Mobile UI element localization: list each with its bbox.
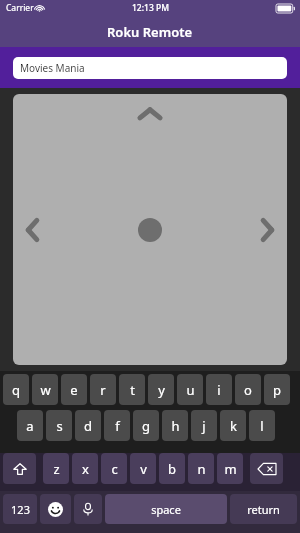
staticText: Movies Mania — [20, 61, 85, 75]
staticText: m — [224, 460, 237, 478]
button[interactable]: Backspace — [250, 453, 283, 484]
staticText: a — [26, 417, 34, 435]
button[interactable]: s — [46, 410, 72, 441]
button[interactable]: Microphone — [74, 494, 102, 524]
staticText: n — [197, 460, 206, 478]
staticText: w — [40, 381, 51, 399]
button[interactable]: z — [43, 453, 69, 484]
button[interactable]: a — [17, 410, 43, 441]
staticText: u — [186, 381, 195, 399]
button[interactable]: w — [32, 374, 58, 405]
button[interactable]: o — [235, 374, 261, 405]
staticText: return — [247, 502, 280, 517]
button[interactable]: y — [148, 374, 174, 405]
staticText: space — [151, 502, 181, 517]
button[interactable]: Right — [244, 207, 287, 253]
button[interactable]: t — [119, 374, 145, 405]
button[interactable]: c — [101, 453, 127, 484]
button[interactable]: q — [3, 374, 29, 405]
button[interactable]: e — [61, 374, 87, 405]
button[interactable]: 123 — [3, 494, 37, 524]
staticText: s — [56, 417, 63, 435]
button[interactable]: g — [133, 410, 159, 441]
button[interactable]: m — [217, 453, 243, 484]
button[interactable]: Shift — [3, 453, 36, 484]
button[interactable]: Movies Mania — [13, 57, 287, 79]
button[interactable]: space — [105, 494, 227, 524]
staticText: c — [111, 460, 118, 478]
button[interactable]: x — [72, 453, 98, 484]
staticText: o — [244, 381, 252, 399]
button[interactable]: r — [90, 374, 116, 405]
staticText: j — [202, 417, 206, 435]
button[interactable]: n — [188, 453, 214, 484]
staticText: Carrier — [6, 2, 34, 14]
staticText: v — [140, 460, 147, 478]
staticText: f — [115, 417, 120, 435]
staticText: q — [12, 381, 20, 399]
button[interactable]: j — [191, 410, 217, 441]
button[interactable]: p — [264, 374, 290, 405]
button[interactable]: f — [104, 410, 130, 441]
staticText: d — [84, 417, 92, 435]
button[interactable]: v — [130, 453, 156, 484]
staticText: e — [70, 381, 78, 399]
button[interactable]: k — [220, 410, 246, 441]
staticText: i — [217, 381, 221, 399]
button[interactable]: u — [177, 374, 203, 405]
button[interactable]: Emoji — [40, 494, 71, 524]
staticText: l — [260, 417, 264, 435]
staticText: p — [273, 381, 281, 399]
button[interactable]: l — [249, 410, 275, 441]
button[interactable]: b — [159, 453, 185, 484]
staticText: y — [158, 381, 165, 399]
button[interactable]: return — [230, 494, 297, 524]
button[interactable]: d — [75, 410, 101, 441]
staticText: 12:13 PM — [132, 2, 169, 14]
staticText: z — [53, 460, 60, 478]
button[interactable]: i — [206, 374, 232, 405]
staticText: g — [142, 417, 150, 435]
staticText: Roku Remote — [107, 23, 193, 41]
staticText: 123 — [11, 502, 30, 517]
staticText: t — [130, 381, 135, 399]
button[interactable]: OK — [128, 208, 172, 252]
staticText: x — [82, 460, 89, 478]
staticText: r — [100, 381, 106, 399]
staticText: b — [168, 460, 176, 478]
staticText: h — [171, 417, 180, 435]
button[interactable]: Up — [127, 94, 173, 140]
button[interactable]: h — [162, 410, 188, 441]
button[interactable]: Left — [13, 207, 56, 253]
staticText: k — [230, 417, 237, 435]
